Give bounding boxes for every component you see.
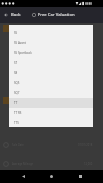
staticText: S7 <box>14 61 18 65</box>
button[interactable]: SQ5 <box>9 78 93 88</box>
button[interactable]: S7 <box>9 58 93 68</box>
staticText: Sale Date <box>12 143 24 147</box>
button[interactable]: TT <box>9 98 93 108</box>
other: Back <box>3 12 9 18</box>
staticText: 12,000 <box>84 162 93 166</box>
staticText: SQ7 <box>14 91 20 95</box>
staticText: S5 Sportback <box>14 51 32 55</box>
staticText: S5 Avant <box>14 41 26 45</box>
staticText: S5 <box>14 31 18 35</box>
staticText: Free Car Valuation <box>38 12 75 18</box>
button[interactable]: SQ7 <box>9 88 93 98</box>
button[interactable]: S8 <box>9 68 93 78</box>
staticText: 01/01/2018 <box>78 143 93 147</box>
button[interactable]: S5 <box>9 28 93 38</box>
staticText: TT <box>14 101 18 105</box>
staticText: SQ5 <box>14 81 20 85</box>
button[interactable]: TT RS <box>9 108 93 118</box>
staticText: TT RS <box>14 111 22 115</box>
button[interactable]: Back <box>0 7 103 23</box>
button[interactable]: TTS <box>9 118 93 127</box>
button[interactable]: S5 Sportback <box>9 48 93 58</box>
button[interactable]: Recents <box>75 171 86 182</box>
button[interactable]: Home <box>46 171 57 182</box>
button[interactable]: S5 Avant <box>9 38 93 48</box>
staticText: Average Mileage <box>12 162 34 166</box>
button[interactable]: Back <box>18 171 29 182</box>
staticText: S8 <box>14 71 18 75</box>
staticText: Back <box>11 12 21 18</box>
staticText: TTS <box>14 121 19 125</box>
